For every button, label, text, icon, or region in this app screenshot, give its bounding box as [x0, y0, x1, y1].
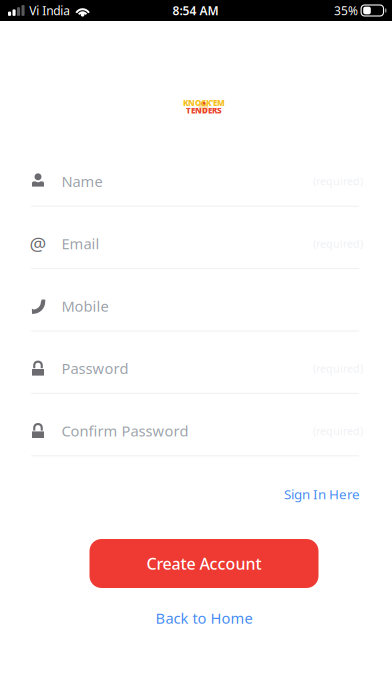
staticText: Create Account	[146, 553, 261, 574]
staticText: Password	[61, 359, 128, 378]
staticText: TENDERS	[186, 105, 222, 116]
staticText: (required)	[313, 236, 363, 251]
staticText: (required)	[313, 361, 363, 375]
staticText: Name	[61, 171, 102, 191]
staticText: Mobile	[61, 296, 108, 316]
staticText: Sign In Here	[284, 485, 360, 503]
staticText: Confirm Password	[61, 421, 188, 441]
button[interactable]: Back to Home	[155, 605, 252, 631]
button[interactable]: Sign In Here	[284, 482, 360, 506]
staticText: (required)	[313, 174, 363, 188]
staticText: KNOCK'EM	[183, 98, 225, 108]
staticText: Vi India	[29, 2, 70, 18]
staticText: 8:54 AM	[172, 2, 218, 18]
button[interactable]: Create Account	[89, 539, 318, 588]
staticText: 35%	[334, 2, 358, 18]
staticText: Email	[61, 234, 99, 253]
staticText: Back to Home	[155, 608, 252, 628]
staticText: @	[29, 231, 46, 256]
staticText: (required)	[313, 424, 363, 438]
